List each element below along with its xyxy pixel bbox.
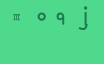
button[interactable]: Music [76, 4, 90, 31]
button[interactable]: Search [55, 11, 67, 27]
button[interactable]: Accounts [13, 13, 22, 22]
button[interactable]: Status [36, 11, 48, 23]
